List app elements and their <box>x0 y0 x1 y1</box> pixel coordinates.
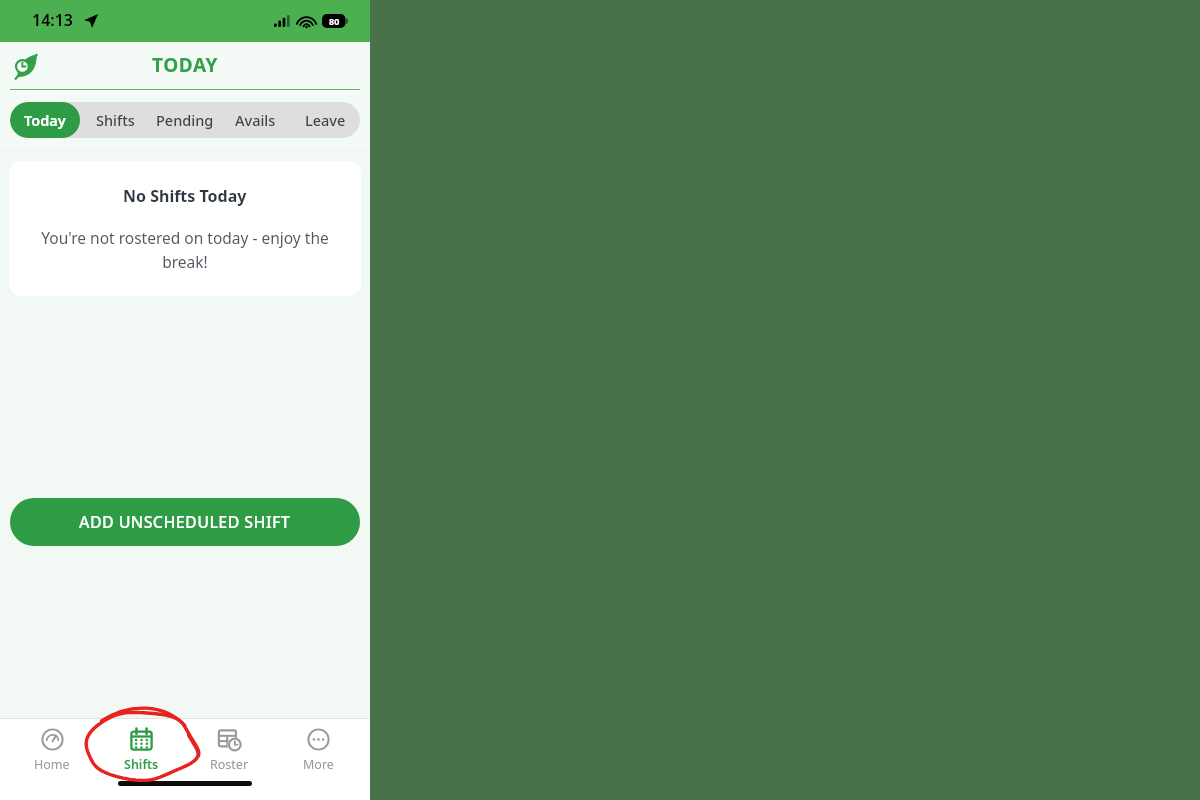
button[interactable]: Leave <box>290 102 360 138</box>
staticText: Shifts <box>96 110 135 130</box>
button[interactable]: More <box>281 724 355 777</box>
staticText: Leave <box>305 110 346 130</box>
staticText: Home <box>34 756 70 773</box>
staticText: ADD UNSCHEDULED SHIFT <box>79 511 291 533</box>
button[interactable]: Pending <box>150 102 220 138</box>
staticText: Pending <box>156 110 214 130</box>
button[interactable]: Shifts <box>80 102 150 138</box>
other: App logo <box>12 53 38 79</box>
button[interactable]: Roster <box>192 724 266 777</box>
staticText: More <box>303 756 334 773</box>
button[interactable]: Today <box>10 102 80 138</box>
staticText: Shifts <box>124 756 159 773</box>
button[interactable]: Home <box>15 724 89 777</box>
button[interactable]: ADD UNSCHEDULED SHIFT <box>10 498 360 546</box>
staticText: Roster <box>210 756 249 773</box>
staticText: You're not rostered on today - enjoy the… <box>27 227 343 272</box>
staticText: 80 <box>329 15 340 27</box>
button[interactable]: No Shifts Today <box>9 161 361 296</box>
staticText: No Shifts Today <box>123 185 247 207</box>
staticText: Avails <box>235 110 276 130</box>
button[interactable]: Avails <box>220 102 290 138</box>
staticText: 14:13 <box>32 9 74 31</box>
button[interactable]: Shifts <box>104 724 178 777</box>
staticText: Today <box>24 110 66 130</box>
staticText: TODAY <box>152 52 219 78</box>
